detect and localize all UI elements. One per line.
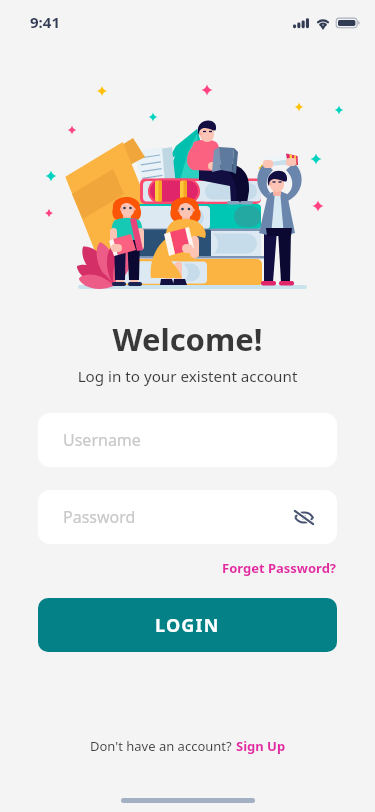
staticText: Forget Password?: [222, 559, 337, 577]
staticText: LOGIN: [155, 613, 220, 638]
button[interactable]: Sign Up: [236, 737, 286, 755]
button[interactable]: Show password: [289, 502, 319, 532]
staticText: Sign Up: [236, 737, 286, 755]
button[interactable]: Password: [38, 490, 337, 544]
staticText: Welcome!: [0, 318, 375, 360]
staticText: Log in to your existent account: [0, 366, 375, 387]
staticText: 9:41: [30, 12, 60, 32]
staticText: Password: [63, 506, 136, 528]
button[interactable]: LOGIN: [38, 598, 337, 652]
staticText: Username: [63, 429, 141, 451]
button[interactable]: Username: [38, 413, 337, 467]
staticText: Don't have an account?: [90, 737, 236, 755]
button[interactable]: Forget Password?: [222, 559, 337, 577]
